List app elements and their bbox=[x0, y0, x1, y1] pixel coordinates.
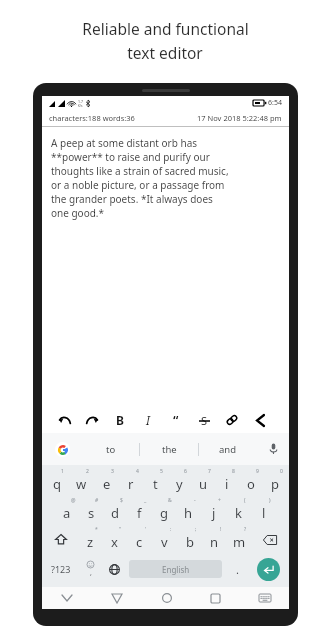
button[interactable]: Emoji bbox=[78, 554, 102, 584]
staticText: ' bbox=[145, 526, 147, 533]
staticText: 1 bbox=[61, 468, 64, 475]
button[interactable]: ) bbox=[251, 496, 276, 525]
staticText: B bbox=[116, 412, 124, 428]
button[interactable]: 6 bbox=[167, 467, 191, 496]
staticText: b bbox=[186, 533, 194, 551]
staticText: f bbox=[137, 504, 142, 522]
staticText: 6:54 bbox=[268, 98, 282, 108]
button[interactable]: ! bbox=[202, 525, 227, 554]
button[interactable]: Quote bbox=[162, 407, 190, 433]
button[interactable]: 1 bbox=[44, 467, 69, 496]
button[interactable]: @ bbox=[55, 496, 79, 525]
staticText: 5 bbox=[160, 468, 163, 475]
button[interactable]: Home bbox=[142, 587, 191, 609]
staticText: y bbox=[176, 475, 183, 493]
staticText: 1.7 bbox=[78, 99, 83, 104]
staticText: d bbox=[111, 504, 119, 522]
staticText: 0 bbox=[280, 468, 283, 475]
button[interactable]: 9 bbox=[239, 467, 263, 496]
button[interactable]: to bbox=[82, 433, 139, 465]
button[interactable]: ( bbox=[226, 496, 251, 525]
button[interactable]: + bbox=[201, 496, 226, 525]
button[interactable]: and bbox=[199, 433, 257, 465]
staticText: 7 bbox=[208, 468, 211, 475]
button[interactable]: Shift bbox=[44, 525, 78, 554]
staticText: ! bbox=[220, 526, 222, 533]
button[interactable]: 4 bbox=[119, 467, 143, 496]
button[interactable]: - bbox=[176, 496, 201, 525]
staticText: ? bbox=[244, 526, 247, 533]
button[interactable]: ? bbox=[227, 525, 252, 554]
staticText: or a noble picture, or a passage from bbox=[51, 178, 225, 192]
button[interactable]: English bbox=[129, 560, 222, 578]
staticText: : bbox=[170, 526, 172, 533]
staticText: & bbox=[168, 497, 172, 504]
button[interactable]: ; bbox=[177, 525, 202, 554]
button[interactable]: $ bbox=[103, 496, 127, 525]
button[interactable]: Strikethrough bbox=[190, 407, 218, 433]
button[interactable]: the bbox=[140, 433, 198, 465]
button[interactable]: ?123 bbox=[44, 554, 78, 584]
button[interactable]: _ bbox=[127, 496, 151, 525]
button[interactable]: Link bbox=[218, 407, 246, 433]
staticText: * bbox=[95, 526, 98, 533]
staticText: K/s bbox=[78, 104, 83, 108]
staticText: 3 bbox=[111, 468, 114, 475]
staticText: w bbox=[76, 475, 87, 493]
button[interactable]: Enter bbox=[257, 558, 280, 581]
staticText: x bbox=[111, 533, 118, 551]
staticText: thoughts like a strain of sacred music, bbox=[51, 164, 229, 178]
button[interactable]: 0 bbox=[263, 467, 287, 496]
button[interactable]: 7 bbox=[191, 467, 215, 496]
button[interactable]: # bbox=[79, 496, 103, 525]
staticText: u bbox=[199, 475, 208, 493]
staticText: . bbox=[236, 562, 239, 577]
staticText: s bbox=[88, 504, 95, 522]
button[interactable]: Back bbox=[92, 587, 142, 609]
button[interactable]: 8 bbox=[215, 467, 239, 496]
staticText: S bbox=[201, 413, 208, 428]
staticText: 8 bbox=[232, 468, 235, 475]
button[interactable]: Undo bbox=[50, 407, 78, 433]
staticText: p bbox=[271, 475, 279, 493]
button[interactable]: Redo bbox=[78, 407, 106, 433]
staticText: i bbox=[225, 475, 229, 493]
staticText: n bbox=[210, 533, 219, 551]
button[interactable]: Recents bbox=[191, 587, 240, 609]
staticText: ) bbox=[269, 497, 271, 504]
staticText: I bbox=[146, 412, 150, 428]
button[interactable]: . bbox=[225, 554, 249, 584]
button[interactable]: & bbox=[151, 496, 176, 525]
staticText: l bbox=[262, 504, 266, 522]
button[interactable]: Change language bbox=[102, 554, 126, 584]
staticText: the bbox=[162, 443, 177, 456]
button[interactable]: Voice input bbox=[257, 433, 289, 465]
button[interactable]: 2 bbox=[69, 467, 94, 496]
staticText: ?123 bbox=[51, 563, 71, 575]
button[interactable]: Backspace bbox=[252, 525, 287, 554]
staticText: t bbox=[153, 475, 158, 493]
button[interactable]: Google bbox=[42, 433, 82, 465]
button[interactable]: 3 bbox=[94, 467, 119, 496]
button[interactable]: ' bbox=[127, 525, 152, 554]
button[interactable]: 5 bbox=[143, 467, 167, 496]
button[interactable]: Bold bbox=[106, 407, 134, 433]
staticText: **power** to raise and purify our bbox=[51, 150, 210, 164]
staticText: v bbox=[161, 533, 168, 551]
staticText: r bbox=[128, 475, 134, 493]
staticText: q bbox=[53, 475, 61, 493]
staticText: 9 bbox=[256, 468, 259, 475]
staticText: 6 bbox=[184, 468, 187, 475]
button[interactable]: A peep at some distant orb has bbox=[42, 127, 289, 407]
button[interactable]: " bbox=[102, 525, 127, 554]
staticText: “ bbox=[173, 412, 179, 428]
staticText: A peep at some distant orb has bbox=[51, 136, 198, 150]
button[interactable]: : bbox=[152, 525, 177, 554]
button[interactable]: Keyboard switcher bbox=[240, 587, 289, 609]
button[interactable]: More bbox=[246, 407, 274, 433]
staticText: o bbox=[247, 475, 255, 493]
button[interactable]: * bbox=[78, 525, 102, 554]
button[interactable]: Hide keyboard bbox=[42, 587, 92, 609]
button[interactable]: Italic bbox=[134, 407, 162, 433]
staticText: h bbox=[184, 504, 193, 522]
